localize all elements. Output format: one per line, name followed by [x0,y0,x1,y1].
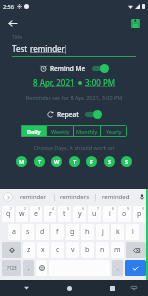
button[interactable]: ?123 [2,260,21,276]
staticText: v [71,245,75,255]
button[interactable]: T [69,156,80,167]
button[interactable]: m [111,242,124,258]
staticText: e [34,209,38,219]
staticText: Yearly [106,128,122,135]
button[interactable]: Hide keyboard [128,282,140,294]
button[interactable]: Recents [106,282,118,294]
staticText: Title [12,34,22,41]
button[interactable]: n [96,242,109,258]
button[interactable]: b [81,242,94,258]
button[interactable]: , [23,260,34,276]
button[interactable]: Save [127,15,143,31]
staticText: 2:56 [3,3,14,10]
staticText: j [102,227,104,237]
staticText: reminders [60,193,90,201]
button[interactable]: u [88,206,101,222]
staticText: , [28,264,30,272]
button[interactable]: s [22,224,34,240]
staticText: 3:00 PM [85,77,116,88]
staticText: d [40,227,45,237]
staticText: f [56,227,59,237]
button[interactable]: Enter [125,260,146,276]
button[interactable]: 8 Apr, 2021 [33,77,75,88]
button[interactable]: p [133,206,146,222]
staticText: r [49,209,52,219]
staticText: t [63,209,66,219]
button[interactable]: Emoji [36,260,47,276]
button[interactable]: W [51,156,62,167]
button[interactable]: Shift [2,242,21,258]
staticText: ?123 [7,265,17,271]
button[interactable]: d [36,224,49,240]
button[interactable]: y [73,206,86,222]
button[interactable]: Voice input [136,189,148,205]
button[interactable]: i [103,206,116,222]
button[interactable]: j [96,224,109,240]
button[interactable]: t [58,206,71,222]
button[interactable]: q [2,206,14,222]
button[interactable]: Remind me toggle [92,64,108,73]
staticText: 9 [127,206,130,211]
button[interactable]: w [16,206,28,222]
button[interactable]: 3:00 PM [85,77,116,88]
button[interactable]: e [30,206,42,222]
staticText: reminder [20,193,47,201]
staticText: Remind Me [50,64,86,73]
staticText: b [85,245,90,255]
button[interactable]: Remind me toggle [85,110,101,119]
button[interactable]: o [118,206,131,222]
staticText: S [125,158,129,165]
button[interactable]: Daily [21,125,46,137]
button[interactable]: Back [20,282,32,294]
button[interactable]: v [66,242,79,258]
button[interactable]: Monthly [74,125,100,137]
button[interactable]: S [121,156,132,167]
staticText: m [114,245,121,255]
staticText: q [6,209,11,219]
staticText: 7 [97,206,100,211]
button[interactable]: reminder [13,189,54,205]
button[interactable]: reminders [55,189,95,205]
staticText: 0 [142,206,145,211]
staticText: Choose Days, it should work on [0,144,148,151]
staticText: g [70,227,75,237]
staticText: w [19,209,25,219]
button[interactable]: Weekly [47,125,73,137]
staticText: T [73,158,77,165]
staticText: reminder [30,43,65,54]
staticText: y [78,209,82,219]
staticText: l [132,227,134,237]
button[interactable]: Backspace [126,242,146,258]
button[interactable]: c [51,242,64,258]
button[interactable]: M [16,156,27,167]
button[interactable]: T [34,156,45,167]
staticText: 8 Apr, 2021 [33,77,75,88]
button[interactable]: Yearly [101,125,127,137]
staticText: W [54,158,60,165]
staticText: o [122,209,127,219]
staticText: s [26,227,30,237]
button[interactable]: reminded [96,189,136,205]
button[interactable]: Home [63,282,75,294]
button[interactable]: z [23,242,35,258]
button[interactable]: S [104,156,115,167]
button[interactable]: F [86,156,97,167]
button[interactable]: More suggestions [3,192,13,202]
button[interactable]: k [111,224,124,240]
staticText: 8 [112,206,115,211]
button[interactable]: x [37,242,49,258]
button[interactable]: f [51,224,64,240]
staticText: 1 [10,206,13,211]
button[interactable]: r [44,206,56,222]
button[interactable]: Back [4,15,20,31]
staticText: 6 [82,206,85,211]
button[interactable]: . [112,260,123,276]
button[interactable]: a [8,224,20,240]
button[interactable]: g [66,224,79,240]
staticText: Repeat [57,110,79,119]
button[interactable]: h [81,224,94,240]
button[interactable]: l [126,224,139,240]
staticText: k [116,227,120,237]
staticText: z [27,245,31,255]
